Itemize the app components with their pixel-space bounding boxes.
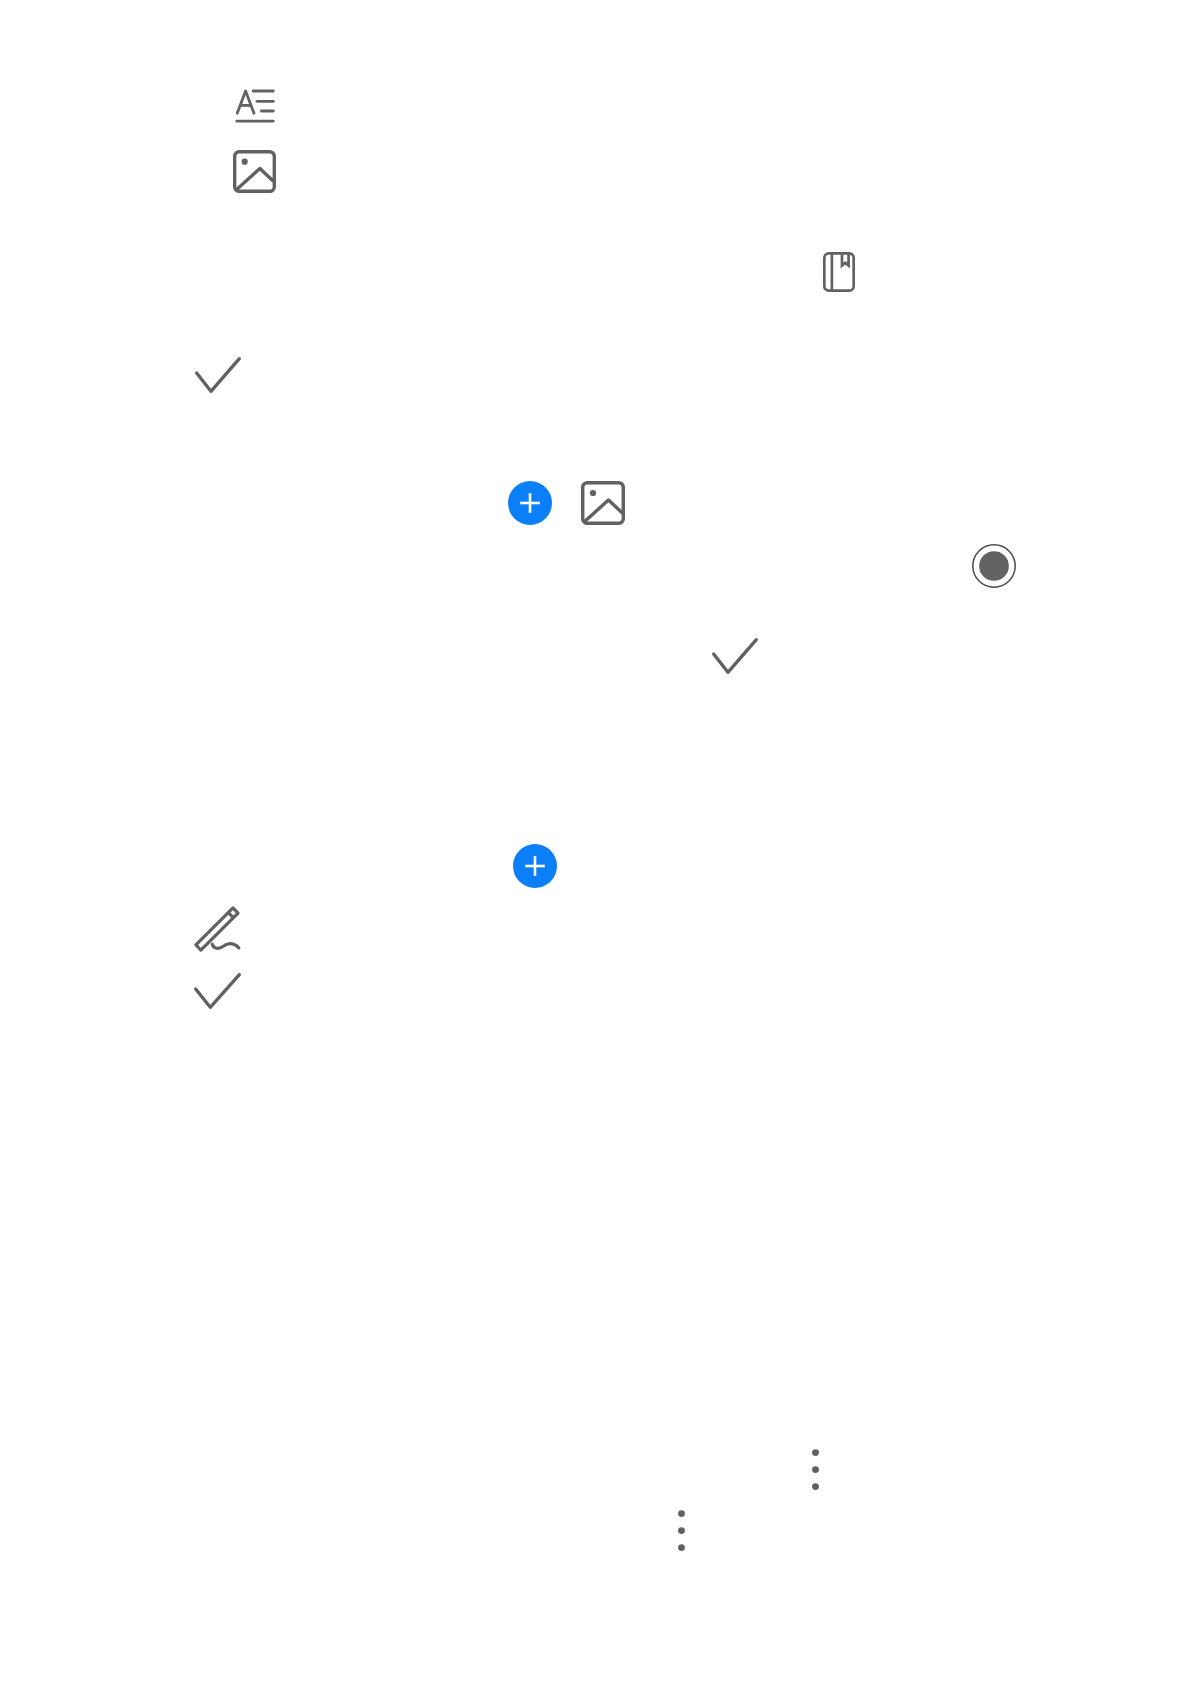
button[interactable]: Insert image (581, 481, 625, 525)
button[interactable]: Insert image (233, 150, 276, 193)
button[interactable]: Checklist item (194, 973, 241, 1009)
button[interactable]: More options (802, 1449, 829, 1490)
button[interactable]: Checklist item (195, 357, 241, 393)
button[interactable]: Selected option (972, 544, 1016, 588)
button[interactable]: Add (508, 481, 552, 525)
button[interactable]: More options (668, 1510, 695, 1551)
button[interactable]: Checklist item (712, 638, 758, 674)
button[interactable]: Draw (195, 907, 241, 952)
button[interactable]: Text formatting (235, 88, 275, 123)
button[interactable]: Add (513, 844, 557, 888)
button[interactable]: Notebook (823, 252, 855, 292)
